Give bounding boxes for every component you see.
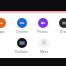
button[interactable]: Photos xyxy=(33,29,52,34)
button[interactable]: Drive xyxy=(54,29,66,34)
button[interactable]: Maps xyxy=(0,29,10,34)
button[interactable]: App 6 xyxy=(39,38,49,48)
staticText: YouTube xyxy=(15,50,28,54)
button[interactable]: App 2 xyxy=(17,18,27,28)
button[interactable]: App 5 xyxy=(17,38,27,48)
staticText: Photos xyxy=(37,30,48,34)
button[interactable]: YouTube xyxy=(12,49,31,54)
staticText: Chrome xyxy=(16,30,28,34)
button[interactable]: App 1 xyxy=(0,18,6,28)
staticText: Maps xyxy=(0,30,5,34)
button[interactable]: Meet xyxy=(34,49,53,54)
staticText: Drive xyxy=(60,30,66,34)
button[interactable]: App 3 xyxy=(38,18,48,28)
button[interactable]: App 4 xyxy=(59,18,66,28)
button[interactable]: Chrome xyxy=(12,29,31,34)
staticText: Meet xyxy=(40,50,48,54)
